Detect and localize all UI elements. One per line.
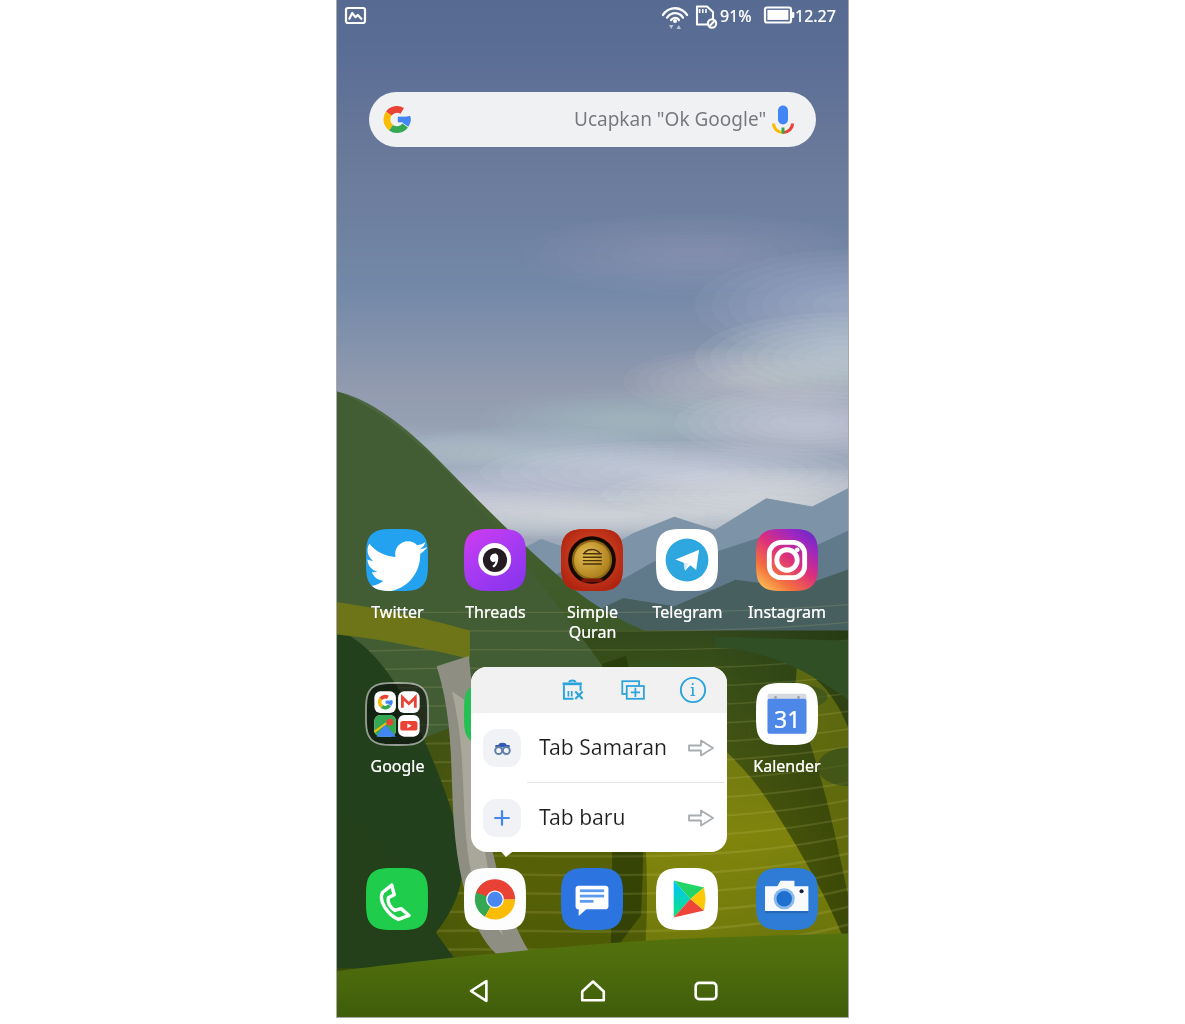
staticText: Kalender [753,755,821,777]
button[interactable]: Play Store [654,866,720,932]
button[interactable]: Recents [684,969,728,1013]
button[interactable]: Chrome [462,866,528,932]
button[interactable]: Messages [559,866,625,932]
button[interactable]: Tab Samaran [471,713,727,782]
staticText: i [690,678,696,701]
button[interactable]: Threads [446,527,544,623]
button[interactable]: Google [348,681,446,777]
button[interactable]: 31 [738,681,836,777]
staticText: 31 [774,703,801,734]
staticText: 12.27 [795,5,836,27]
button[interactable]: Phone [364,866,430,932]
staticText: Tab baru [539,803,626,832]
staticText: Threads [465,601,526,623]
button[interactable]: Tab baru [471,783,727,852]
staticText: Simple Quran [567,601,618,642]
staticText: Google [370,755,425,777]
staticText: Twitter [371,601,424,623]
staticText: 91% [720,5,752,27]
staticText: Ucapkan "Ok Google" [574,106,767,132]
button[interactable]: Pe [446,681,544,777]
staticText: Telegram [652,601,723,623]
button[interactable]: Back [458,969,502,1013]
button[interactable]: Telegram [638,527,736,623]
staticText: Tab Samaran [539,733,667,762]
staticText: Pe [486,755,505,777]
button[interactable]: App info [677,674,709,706]
button[interactable]: Simple Quran [543,527,641,642]
button[interactable]: Camera [754,866,820,932]
button[interactable]: Ucapkan "Ok Google" [369,92,816,147]
button[interactable]: Instagram [738,527,836,623]
button[interactable]: Twitter [348,527,446,623]
staticText: Instagram [748,601,826,623]
button[interactable]: Add widget [617,674,649,706]
button[interactable]: Uninstall [558,674,590,706]
button[interactable]: Home [571,969,615,1013]
